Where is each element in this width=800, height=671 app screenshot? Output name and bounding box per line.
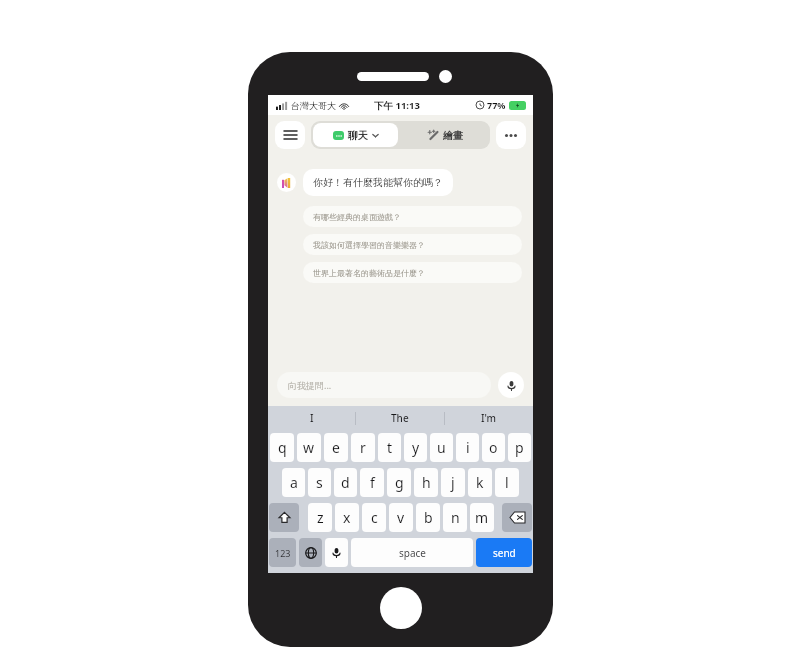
button[interactable]: t <box>378 433 401 462</box>
button[interactable]: Backspace <box>502 503 532 532</box>
button[interactable]: h <box>414 468 438 497</box>
button[interactable]: z <box>308 503 332 532</box>
button[interactable]: c <box>362 503 386 532</box>
staticText: 台灣大哥大 <box>291 100 336 111</box>
button[interactable]: send <box>476 538 532 567</box>
staticText: 我該如何選擇學習的音樂樂器？ <box>313 240 425 250</box>
staticText: q <box>278 438 287 457</box>
staticText: v <box>397 508 405 527</box>
staticText: 你好！有什麼我能幫你的嗎？ <box>313 176 443 189</box>
button[interactable]: x <box>335 503 359 532</box>
button[interactable]: f <box>360 468 384 497</box>
button[interactable]: v <box>389 503 413 532</box>
staticText: 下午 11:13 <box>374 99 420 112</box>
button[interactable]: I <box>268 406 355 430</box>
staticText: o <box>489 438 498 457</box>
button[interactable]: space <box>351 538 473 567</box>
button[interactable]: d <box>334 468 357 497</box>
staticText: The <box>391 411 409 425</box>
staticText: g <box>395 473 404 492</box>
staticText: t <box>387 438 393 457</box>
button[interactable]: 我該如何選擇學習的音樂樂器？ <box>303 234 522 255</box>
staticText: 有哪些經典的桌面遊戲？ <box>313 212 401 222</box>
staticText: w <box>303 438 315 457</box>
staticText: 123 <box>275 547 291 559</box>
button[interactable]: 123 <box>269 538 296 567</box>
button[interactable]: i <box>456 433 479 462</box>
button[interactable]: l <box>495 468 519 497</box>
button[interactable]: q <box>270 433 294 462</box>
button[interactable]: y <box>404 433 427 462</box>
button[interactable]: Menu <box>275 121 305 149</box>
button[interactable]: a <box>282 468 305 497</box>
button[interactable]: The <box>356 406 444 430</box>
staticText: I'm <box>481 411 497 425</box>
staticText: l <box>505 473 509 492</box>
button[interactable]: g <box>387 468 411 497</box>
button[interactable]: k <box>468 468 492 497</box>
staticText: space <box>399 546 426 560</box>
staticText: a <box>290 473 298 492</box>
staticText: 77% <box>487 99 506 111</box>
staticText: h <box>422 473 431 492</box>
staticText: r <box>360 438 366 457</box>
staticText: f <box>370 473 375 492</box>
staticText: k <box>476 473 484 492</box>
staticText: I <box>310 411 314 425</box>
button[interactable]: Dictation <box>325 538 348 567</box>
staticText: m <box>475 508 489 527</box>
button[interactable]: j <box>441 468 465 497</box>
button[interactable]: More options <box>496 121 526 149</box>
button[interactable]: I'm <box>445 406 533 430</box>
staticText: 世界上最著名的藝術品是什麼？ <box>313 268 425 278</box>
button[interactable]: e <box>324 433 348 462</box>
button[interactable]: p <box>508 433 531 462</box>
button[interactable]: m <box>470 503 494 532</box>
button[interactable]: b <box>416 503 440 532</box>
staticText: i <box>466 438 470 457</box>
button[interactable]: n <box>443 503 467 532</box>
button[interactable]: 聊天 <box>313 123 398 147</box>
staticText: n <box>451 508 460 527</box>
staticText: z <box>317 508 324 527</box>
button[interactable]: w <box>297 433 321 462</box>
staticText: c <box>371 508 378 527</box>
button[interactable]: s <box>308 468 331 497</box>
button[interactable]: 你好！有什麼我能幫你的嗎？ <box>303 169 453 196</box>
staticText: s <box>316 473 323 492</box>
button[interactable]: Voice input <box>498 372 524 398</box>
staticText: e <box>332 438 340 457</box>
button[interactable]: Shift <box>269 503 299 532</box>
staticText: b <box>424 508 433 527</box>
staticText: 聊天 <box>348 129 368 142</box>
button[interactable]: r <box>351 433 375 462</box>
button[interactable]: Change keyboard <box>299 538 322 567</box>
button[interactable]: o <box>482 433 505 462</box>
staticText: u <box>437 438 446 457</box>
button[interactable]: 向我提問... <box>277 372 491 398</box>
button[interactable]: u <box>430 433 453 462</box>
staticText: 繪畫 <box>443 129 463 142</box>
staticText: x <box>343 508 351 527</box>
button[interactable]: 世界上最著名的藝術品是什麼？ <box>303 262 522 283</box>
staticText: y <box>412 438 420 457</box>
staticText: j <box>451 473 455 492</box>
staticText: send <box>493 546 516 560</box>
button[interactable]: 繪畫 <box>400 121 490 149</box>
staticText: 向我提問... <box>288 379 332 391</box>
button[interactable]: 有哪些經典的桌面遊戲？ <box>303 206 522 227</box>
staticText: p <box>515 438 524 457</box>
staticText: d <box>341 473 350 492</box>
